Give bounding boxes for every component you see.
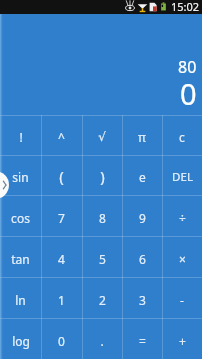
button[interactable]: 7 — [41, 195, 82, 236]
button[interactable]: 4 — [41, 236, 82, 277]
button[interactable]: Open bracket — [41, 155, 82, 195]
staticText: 1 — [58, 292, 65, 308]
staticText: = — [139, 333, 146, 349]
button[interactable]: Multiply — [162, 236, 202, 277]
button[interactable]: Divide — [162, 195, 202, 236]
button[interactable]: Factorial — [0, 115, 41, 155]
staticText: cos — [11, 210, 30, 226]
staticText: 80 — [178, 56, 197, 78]
staticText: 7 — [58, 210, 65, 226]
staticText: 6 — [139, 251, 146, 267]
staticText: 15:02 — [171, 0, 200, 13]
staticText: √ — [98, 130, 106, 144]
button[interactable]: sin — [0, 155, 41, 195]
staticText: 5 — [99, 251, 106, 267]
button[interactable]: Close bracket — [82, 155, 122, 195]
staticText: tan — [11, 251, 30, 267]
staticText: 8 — [99, 210, 106, 226]
button[interactable]: 0 — [41, 318, 82, 359]
staticText: 3 — [139, 292, 146, 308]
button[interactable]: 3 — [122, 277, 162, 318]
button[interactable]: Minus — [162, 277, 202, 318]
button[interactable]: e — [122, 155, 162, 195]
button[interactable]: 1 — [41, 277, 82, 318]
staticText: ! — [19, 129, 23, 145]
button[interactable]: Delete — [162, 155, 202, 195]
staticText: ÷ — [179, 210, 186, 226]
staticText: - — [180, 292, 184, 308]
staticText: 0 — [58, 333, 65, 349]
staticText: 0 — [180, 74, 197, 113]
staticText: ) — [100, 166, 105, 186]
staticText: ^ — [58, 129, 65, 145]
button[interactable]: 5 — [82, 236, 122, 277]
staticText: . — [100, 333, 104, 349]
staticText: ln — [15, 292, 26, 308]
staticText: DEL — [172, 169, 193, 185]
button[interactable]: Plus — [162, 318, 202, 359]
staticText: log — [12, 333, 30, 349]
button[interactable]: cos — [0, 195, 41, 236]
button[interactable]: ln — [0, 277, 41, 318]
staticText: c — [179, 129, 185, 145]
button[interactable]: Pi — [122, 115, 162, 155]
button[interactable]: 80 — [0, 14, 202, 115]
staticText: π — [138, 129, 146, 145]
button[interactable]: Power — [41, 115, 82, 155]
button[interactable]: Square root — [82, 115, 122, 155]
staticText: e — [139, 169, 146, 185]
button[interactable]: 8 — [82, 195, 122, 236]
button[interactable]: 2 — [82, 277, 122, 318]
staticText: + — [179, 333, 186, 349]
staticText: 2 — [99, 292, 106, 308]
button[interactable]: Equals — [122, 318, 162, 359]
button[interactable]: Decimal point — [82, 318, 122, 359]
button[interactable]: 6 — [122, 236, 162, 277]
staticText: sin — [12, 169, 29, 185]
staticText: 4 — [58, 251, 65, 267]
staticText: 9 — [139, 210, 146, 226]
staticText: × — [179, 251, 186, 267]
button[interactable]: tan — [0, 236, 41, 277]
button[interactable]: log — [0, 318, 41, 359]
button[interactable]: 9 — [122, 195, 162, 236]
button[interactable]: Clear — [162, 115, 202, 155]
button[interactable]: Open navigation drawer — [0, 171, 9, 199]
staticText: ( — [59, 166, 64, 186]
